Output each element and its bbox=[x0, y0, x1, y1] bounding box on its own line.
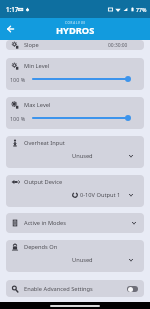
button[interactable]: 0-10V Output 1 bbox=[72, 188, 134, 201]
staticText: Unused bbox=[72, 152, 93, 160]
staticText: Enable Advanced Settings bbox=[24, 285, 93, 293]
staticText: 0-10V Output 1 bbox=[80, 191, 121, 199]
staticText: Output Device bbox=[24, 178, 63, 186]
button[interactable]: Active in Modes bbox=[6, 213, 144, 233]
button[interactable]: Min Level bbox=[33, 73, 131, 85]
button[interactable]: Back bbox=[3, 22, 17, 36]
staticText: 100 % bbox=[10, 115, 26, 122]
staticText: C O R A L V U E bbox=[65, 21, 86, 25]
staticText: 00:30:00 bbox=[108, 42, 128, 49]
staticText: 77% bbox=[136, 6, 147, 13]
staticText: 1:17 bbox=[6, 5, 19, 13]
staticText: Overheat Input bbox=[24, 139, 65, 147]
staticText: Max Level bbox=[24, 101, 51, 109]
button[interactable]: Max Level bbox=[33, 112, 131, 124]
staticText: Min Level bbox=[24, 62, 50, 70]
staticText: 100 % bbox=[10, 76, 26, 83]
staticText: Depends On bbox=[24, 243, 58, 251]
button[interactable]: Slope bbox=[6, 40, 144, 50]
button[interactable]: Enable Advanced Settings bbox=[127, 286, 138, 292]
staticText: HYDROS bbox=[56, 24, 95, 37]
button[interactable]: Unused bbox=[72, 149, 134, 162]
staticText: Unused bbox=[72, 256, 93, 264]
staticText: Active in Modes bbox=[24, 219, 66, 227]
button[interactable]: Unused bbox=[72, 253, 134, 266]
button[interactable]: Enable Advanced Settings bbox=[6, 280, 144, 297]
staticText: Slope bbox=[24, 41, 39, 49]
